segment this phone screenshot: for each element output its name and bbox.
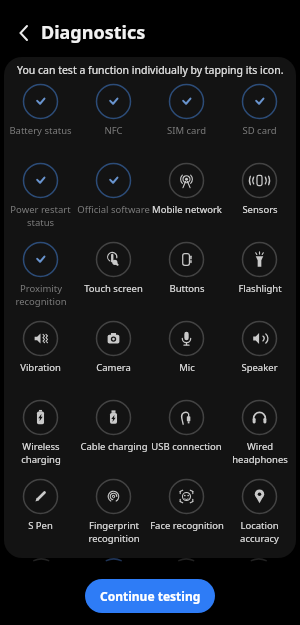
staticText: Camera	[96, 361, 131, 374]
staticText: Diagnostics	[41, 20, 146, 45]
button[interactable]: S Pen	[4, 479, 77, 558]
button[interactable]: Continue testing	[85, 579, 215, 613]
staticText: Touch screen	[84, 282, 143, 295]
staticText: Power restart status	[10, 203, 71, 229]
button[interactable]: Location accuracy	[223, 479, 296, 558]
staticText: Vibration	[20, 361, 61, 374]
staticText: Cable charging	[80, 440, 148, 453]
staticText: You can test a function individually by …	[17, 63, 284, 77]
staticText: Buttons	[169, 282, 205, 295]
button[interactable]: Power restart status	[4, 163, 77, 242]
button[interactable]: Camera	[77, 321, 150, 400]
button[interactable]: Vibration	[4, 321, 77, 400]
staticText: SD card	[242, 124, 277, 137]
staticText: Mobile network	[152, 203, 222, 216]
button[interactable]: Buttons	[150, 242, 223, 321]
button[interactable]: USB connection	[150, 400, 223, 479]
button[interactable]: Mobile network	[150, 163, 223, 242]
staticText: Proximity recognition	[15, 282, 67, 308]
button[interactable]: Battery status	[4, 84, 77, 163]
button[interactable]: Flashlight	[223, 242, 296, 321]
staticText: Flashlight	[238, 282, 282, 295]
staticText: Battery status	[9, 124, 72, 137]
staticText: Speaker	[241, 361, 278, 374]
staticText: Mic	[179, 361, 195, 374]
button[interactable]: Cable charging	[77, 400, 150, 479]
button[interactable]: SD card	[223, 84, 296, 163]
button[interactable]: Proximity recognition	[4, 242, 77, 321]
staticText: Official software	[77, 203, 150, 216]
staticText: Sensors	[242, 203, 278, 216]
staticText: S Pen	[28, 519, 53, 532]
button[interactable]: NFC	[77, 84, 150, 163]
button[interactable]	[12, 21, 36, 45]
button[interactable]: SIM card	[150, 84, 223, 163]
button[interactable]: Fingerprint recognition	[77, 479, 150, 558]
staticText: Continue testing	[100, 588, 201, 604]
staticText: Fingerprint recognition	[88, 519, 140, 545]
staticText: Face recognition	[150, 519, 224, 532]
staticText: USB connection	[151, 440, 222, 453]
button[interactable]: Touch screen	[77, 242, 150, 321]
button[interactable]: Mic	[150, 321, 223, 400]
staticText: NFC	[104, 124, 123, 137]
staticText: Location accuracy	[240, 519, 279, 545]
button[interactable]: Speaker	[223, 321, 296, 400]
staticText: SIM card	[167, 124, 206, 137]
staticText: Wireless charging	[21, 440, 61, 466]
button[interactable]: Official software	[77, 163, 150, 242]
button[interactable]: Face recognition	[150, 479, 223, 558]
staticText: Wired headphones	[232, 440, 288, 466]
button[interactable]: Sensors	[223, 163, 296, 242]
button[interactable]: Wireless charging	[4, 400, 77, 479]
button[interactable]: Wired headphones	[223, 400, 296, 479]
